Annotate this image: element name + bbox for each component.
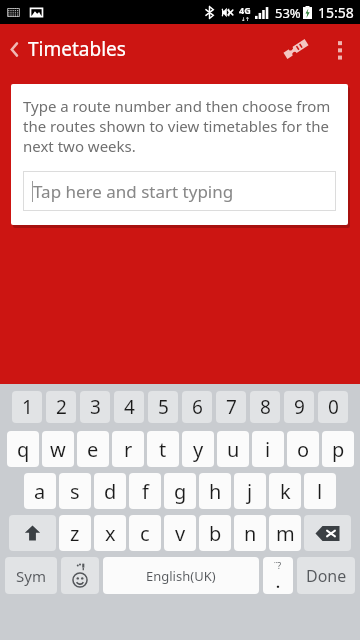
button[interactable]: 9 xyxy=(284,391,314,423)
button[interactable]: d xyxy=(94,473,126,509)
button[interactable]: h xyxy=(199,473,231,509)
button[interactable]: l xyxy=(304,473,336,509)
staticText: 0 xyxy=(328,394,339,420)
button[interactable]: c xyxy=(129,515,161,551)
staticText: d xyxy=(104,478,117,505)
button[interactable]: 3 xyxy=(80,391,110,423)
staticText: r xyxy=(124,436,133,463)
staticText: b xyxy=(209,520,222,547)
staticText: e xyxy=(87,436,99,463)
button[interactable]: y xyxy=(182,431,214,467)
button[interactable]: u xyxy=(217,431,249,467)
staticText: n xyxy=(244,520,257,547)
staticText: x xyxy=(105,520,116,547)
button[interactable]: m xyxy=(269,515,301,551)
staticText: 53% xyxy=(275,4,301,22)
staticText: v xyxy=(175,520,186,547)
staticText: a xyxy=(34,478,46,505)
staticText: 15:58 xyxy=(318,3,354,22)
button[interactable]: ˙˙? xyxy=(263,557,293,594)
button[interactable]: z xyxy=(59,515,91,551)
button[interactable]: Shift xyxy=(9,515,56,551)
button[interactable]: Tap here and start typing xyxy=(23,171,336,211)
button[interactable]: English(UK) xyxy=(103,557,259,594)
staticText: English(UK) xyxy=(146,567,216,585)
button[interactable]: j xyxy=(234,473,266,509)
button[interactable]: 1 xyxy=(12,391,42,423)
staticText: 3 xyxy=(90,394,101,420)
staticText: c xyxy=(140,520,150,547)
staticText: g xyxy=(174,478,187,505)
staticText: 7 xyxy=(226,394,237,420)
button[interactable]: v xyxy=(164,515,196,551)
staticText: Tap here and start typing xyxy=(33,180,234,203)
button[interactable]: w xyxy=(42,431,74,467)
staticText: i xyxy=(265,436,271,463)
button[interactable]: Tickets xyxy=(272,24,320,74)
staticText: Done xyxy=(306,565,347,587)
staticText: h xyxy=(209,478,222,505)
button[interactable]: 4 xyxy=(114,391,144,423)
staticText: 5 xyxy=(158,394,169,420)
staticText: ˙˙? xyxy=(274,559,282,571)
button[interactable]: 7 xyxy=(216,391,246,423)
button[interactable]: p xyxy=(322,431,354,467)
staticText: w xyxy=(50,436,66,463)
button[interactable]: b xyxy=(199,515,231,551)
button[interactable]: e xyxy=(77,431,109,467)
staticText: 1 xyxy=(22,394,33,420)
staticText: u xyxy=(227,436,240,463)
staticText: q xyxy=(17,436,30,463)
staticText: Sym xyxy=(16,566,46,586)
staticText: f xyxy=(142,478,149,505)
button[interactable]: Sym xyxy=(5,557,57,594)
staticText: Timetables xyxy=(28,36,126,62)
button[interactable]: 2 xyxy=(46,391,76,423)
button[interactable]: f xyxy=(129,473,161,509)
staticText: l xyxy=(317,478,323,505)
button[interactable]: i xyxy=(252,431,284,467)
staticText: 8 xyxy=(260,394,271,420)
button[interactable]: Backspace xyxy=(304,515,351,551)
staticText: z xyxy=(70,520,80,547)
button[interactable]: a xyxy=(24,473,56,509)
staticText: ↓↑ xyxy=(241,16,250,22)
staticText: p xyxy=(332,436,345,463)
button[interactable]: Emoji and voice input xyxy=(61,557,99,594)
staticText: 6 xyxy=(192,394,203,420)
button[interactable]: o xyxy=(287,431,319,467)
button[interactable]: s xyxy=(59,473,91,509)
staticText: j xyxy=(247,478,253,505)
button[interactable]: Timetables xyxy=(0,24,140,74)
button[interactable]: g xyxy=(164,473,196,509)
staticText: 4G xyxy=(239,4,251,16)
button[interactable]: 5 xyxy=(148,391,178,423)
staticText: o xyxy=(297,436,310,463)
staticText: k xyxy=(280,478,291,505)
button[interactable]: 6 xyxy=(182,391,212,423)
button[interactable]: 8 xyxy=(250,391,280,423)
button[interactable]: x xyxy=(94,515,126,551)
staticText: m xyxy=(276,520,295,547)
button[interactable]: n xyxy=(234,515,266,551)
button[interactable]: k xyxy=(269,473,301,509)
staticText: . xyxy=(276,573,280,592)
staticText: Type a route number and then choose from… xyxy=(23,96,336,156)
staticText: 2 xyxy=(56,394,67,420)
staticText: 4 xyxy=(124,394,135,420)
button[interactable]: t xyxy=(147,431,179,467)
button[interactable]: More options xyxy=(320,24,360,74)
button[interactable]: Done xyxy=(297,557,355,594)
staticText: s xyxy=(70,478,80,505)
staticText: 9 xyxy=(294,394,305,420)
button[interactable]: r xyxy=(112,431,144,467)
button[interactable]: 0 xyxy=(318,391,348,423)
button[interactable]: q xyxy=(7,431,39,467)
staticText: y xyxy=(193,436,204,463)
staticText: t xyxy=(159,436,167,463)
